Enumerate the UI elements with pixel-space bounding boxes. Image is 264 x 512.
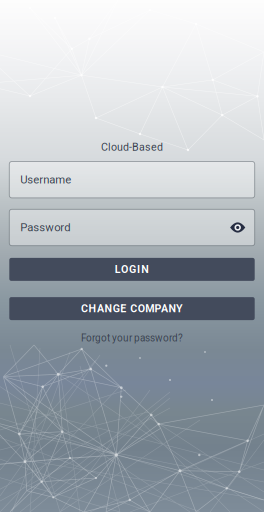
staticText: Forgot your password? bbox=[81, 332, 183, 344]
button[interactable]: Forgot your password? bbox=[81, 329, 183, 347]
staticText: Username bbox=[20, 173, 71, 186]
staticText: LOGIN bbox=[115, 263, 149, 276]
staticText: Cloud-Based bbox=[101, 141, 163, 153]
button[interactable]: Show password bbox=[227, 216, 249, 238]
button[interactable]: CHANGE COMPANY bbox=[9, 297, 255, 320]
button[interactable]: LOGIN bbox=[9, 258, 255, 281]
staticText: Password bbox=[20, 221, 70, 234]
staticText: CHANGE COMPANY bbox=[81, 302, 183, 315]
